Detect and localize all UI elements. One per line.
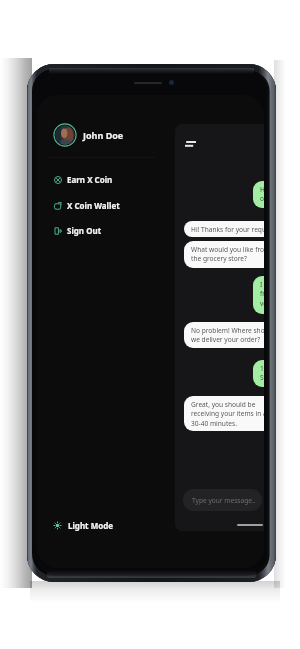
staticText: Great, you should be receiving your item… (191, 400, 264, 428)
staticText: Earn X Coin (67, 174, 113, 185)
staticText: What would you like from the grocery sto… (191, 245, 264, 263)
button[interactable]: X Coin Wallet (37, 195, 157, 216)
staticText: Light Mode (68, 520, 114, 531)
button[interactable]: Type your message.. (183, 489, 262, 511)
button[interactable]: Open menu (185, 141, 196, 148)
button[interactable]: John Doe (37, 122, 147, 147)
staticText: Type your message.. (192, 496, 256, 505)
button[interactable]: Earn X Coin (37, 169, 157, 190)
staticText: I need some fruits and vegetables (260, 280, 264, 308)
staticText: No problem! Where should we deliver your… (191, 326, 264, 344)
staticText: Hi! Thanks for your request (191, 225, 264, 234)
staticText: X Coin Wallet (67, 200, 120, 211)
staticText: Hi, I need to order items (260, 185, 264, 203)
staticText: 123 Main Street (260, 364, 264, 382)
staticText: Sign Out (67, 225, 102, 236)
button[interactable]: Sign Out (37, 220, 157, 241)
button[interactable]: Light Mode (37, 515, 137, 535)
staticText: John Doe (83, 129, 124, 141)
